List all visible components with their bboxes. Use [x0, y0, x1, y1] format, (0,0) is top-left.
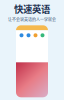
staticText: 快速英语 [14, 2, 50, 15]
staticText: 让不会说英语的人一学就会 [8, 16, 56, 22]
